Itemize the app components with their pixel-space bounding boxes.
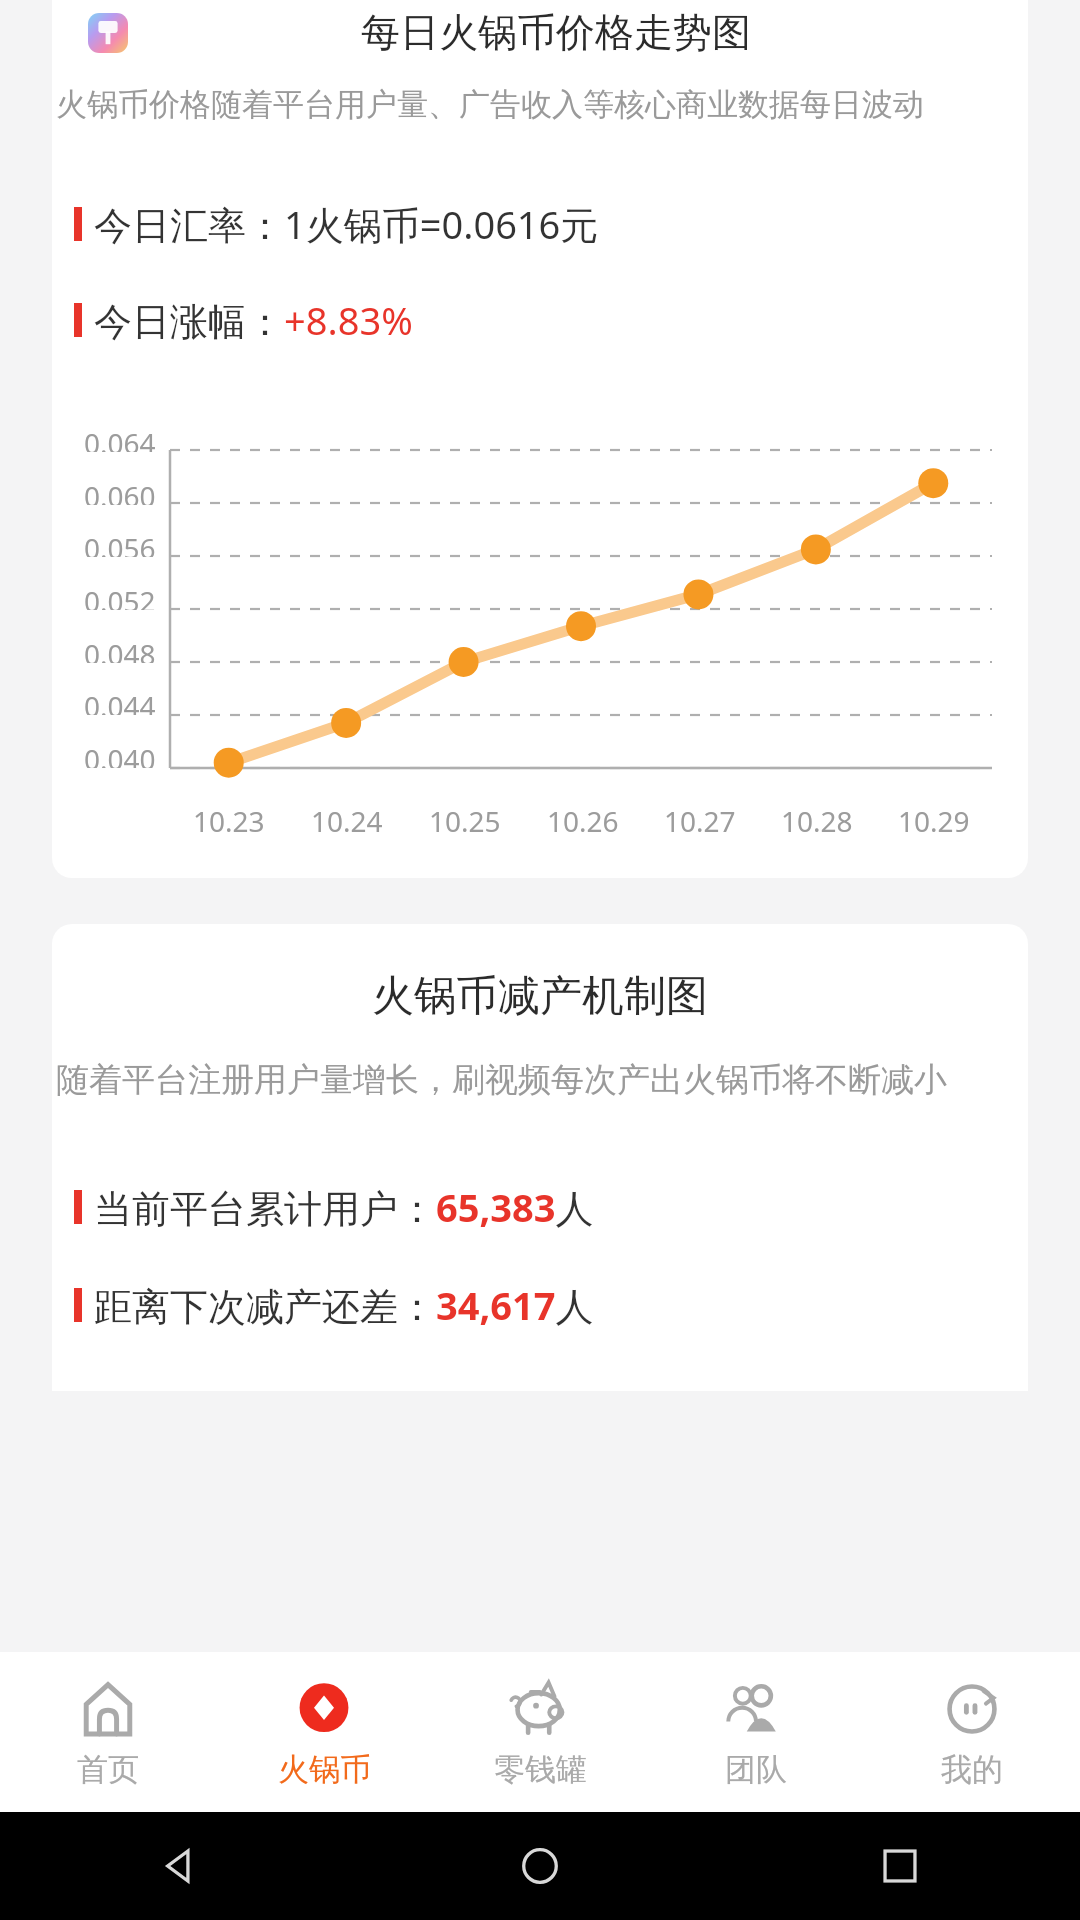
staticText: 今日涨幅：+8.83%	[94, 294, 413, 346]
staticText: 0.040	[84, 740, 156, 768]
button[interactable]: 火锅币	[216, 1652, 432, 1812]
staticText: 10.24	[311, 802, 383, 840]
staticText: 10.26	[547, 802, 619, 840]
staticText: 火锅币	[278, 1750, 371, 1789]
button[interactable]: Recents	[720, 1812, 1080, 1920]
staticText: 0.044	[84, 687, 156, 715]
staticText: 首页	[77, 1750, 139, 1789]
staticText: 10.28	[781, 802, 853, 840]
button[interactable]: 我的	[864, 1652, 1080, 1812]
staticText: 10.27	[664, 802, 736, 840]
staticText: 今日汇率：1火锅币=0.0616元	[94, 198, 599, 250]
staticText: 当前平台累计用户：65,383人	[94, 1181, 594, 1233]
button[interactable]: 首页	[0, 1652, 216, 1812]
staticText: 0.060	[84, 477, 156, 505]
button[interactable]: Back	[0, 1812, 360, 1920]
button[interactable]: Home	[360, 1812, 720, 1920]
staticText: 10.23	[193, 802, 265, 840]
staticText: 0.052	[84, 582, 156, 610]
staticText: 火锅币价格随着平台用户量、广告收入等核心商业数据每日波动	[56, 85, 1024, 124]
staticText: 0.064	[84, 424, 156, 452]
staticText: 0.056	[84, 529, 156, 557]
staticText: 距离下次减产还差：34,617人	[94, 1279, 594, 1331]
staticText: 每日火锅币价格走势图	[361, 8, 751, 57]
staticText: 我的	[941, 1750, 1003, 1789]
staticText: 10.25	[429, 802, 501, 840]
button[interactable]: 零钱罐	[432, 1652, 648, 1812]
staticText: 随着平台注册用户量增长，刷视频每次产出火锅币将不断减小	[56, 1059, 1024, 1101]
staticText: 10.29	[898, 802, 970, 840]
button[interactable]: 团队	[648, 1652, 864, 1812]
staticText: 火锅币减产机制图	[52, 970, 1028, 1023]
staticText: 0.048	[84, 635, 156, 663]
staticText: 团队	[725, 1750, 787, 1789]
staticText: 零钱罐	[494, 1750, 587, 1789]
